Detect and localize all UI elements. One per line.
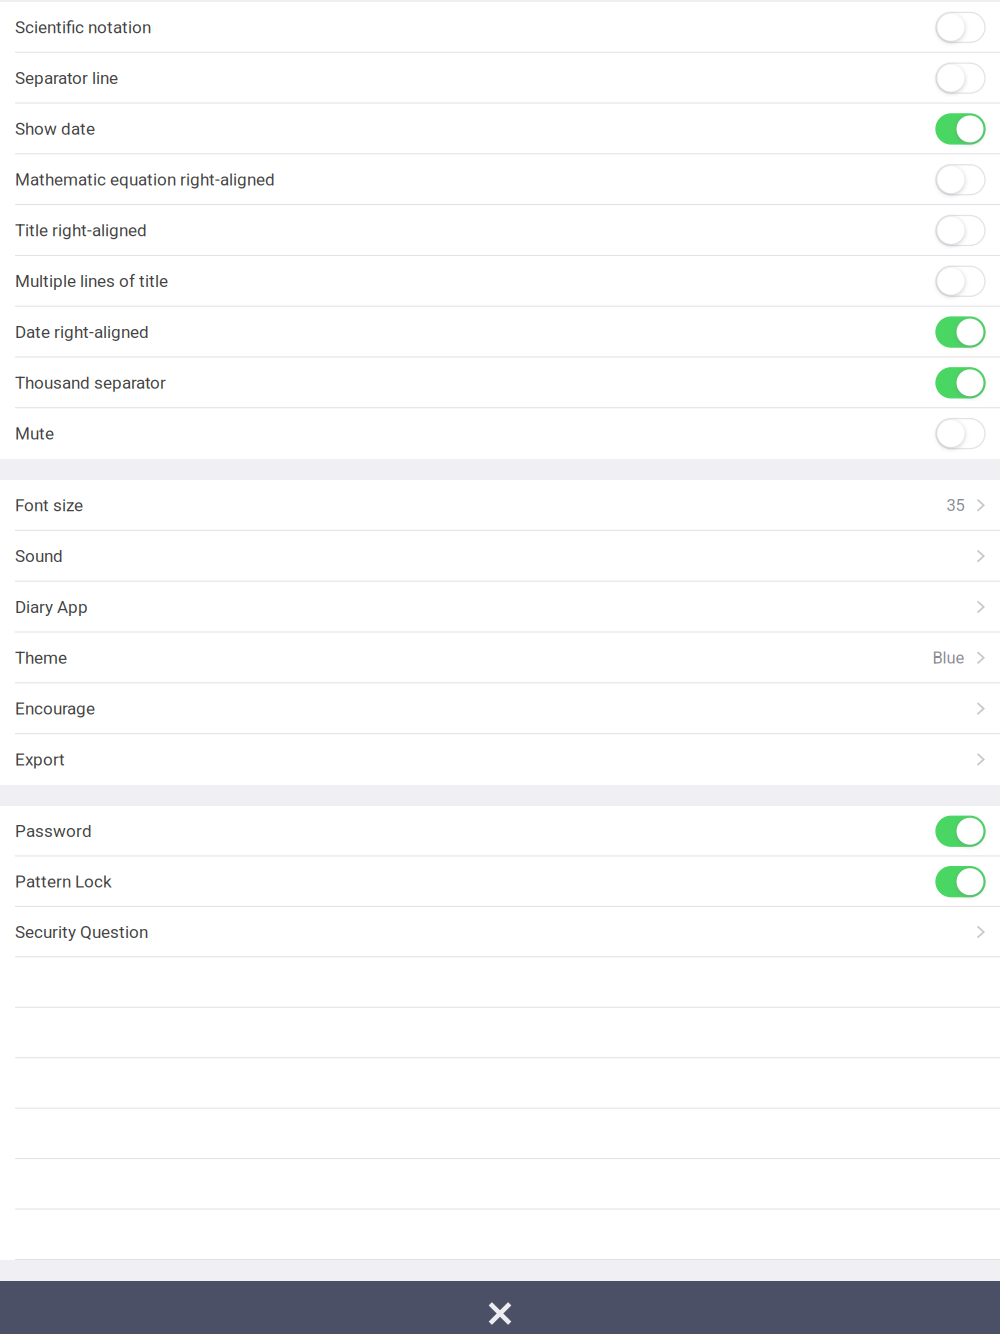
staticText: Thousand separator	[15, 373, 166, 393]
button[interactable]: Mute	[0, 408, 1000, 459]
staticText: Security Question	[15, 922, 148, 942]
button[interactable]: Font size	[0, 480, 1000, 531]
button[interactable]: Title right-aligned	[0, 205, 1000, 256]
staticText: Encourage	[15, 699, 95, 719]
staticText: Font size	[15, 495, 83, 515]
button[interactable]: Pattern Lock	[0, 856, 1000, 907]
staticText: Multiple lines of title	[15, 271, 168, 291]
staticText: Theme	[15, 648, 67, 668]
button[interactable]: Mathematic equation right-aligned	[0, 154, 1000, 205]
button[interactable]: Separator line	[0, 53, 1000, 104]
button[interactable]: Password	[0, 806, 1000, 856]
button[interactable]: Show date	[0, 104, 1000, 154]
staticText: Password	[15, 821, 92, 841]
staticText: Date right-aligned	[15, 322, 149, 342]
staticText: Diary App	[15, 597, 88, 617]
button[interactable]: Multiple lines of title	[0, 256, 1000, 307]
staticText: 35	[946, 496, 964, 515]
staticText: Export	[15, 750, 65, 770]
staticText: Mute	[15, 424, 54, 444]
button[interactable]: Theme	[0, 632, 1000, 683]
button[interactable]: Sound	[0, 531, 1000, 582]
staticText: Blue	[932, 648, 964, 668]
staticText: Show date	[15, 119, 95, 139]
staticText: Title right-aligned	[15, 220, 147, 240]
button[interactable]: Encourage	[0, 683, 1000, 734]
button[interactable]: Scientific notation	[0, 2, 1000, 53]
button[interactable]: Diary App	[0, 582, 1000, 632]
staticText: Separator line	[15, 68, 118, 88]
staticText: Scientific notation	[15, 17, 151, 37]
button[interactable]: Close	[0, 1281, 1000, 1334]
staticText: Mathematic equation right-aligned	[15, 170, 275, 190]
staticText: Pattern Lock	[15, 872, 112, 892]
button[interactable]: Export	[0, 734, 1000, 785]
staticText: Sound	[15, 546, 63, 566]
button[interactable]: Date right-aligned	[0, 307, 1000, 357]
button[interactable]: Thousand separator	[0, 357, 1000, 408]
button[interactable]: Security Question	[0, 907, 1000, 957]
